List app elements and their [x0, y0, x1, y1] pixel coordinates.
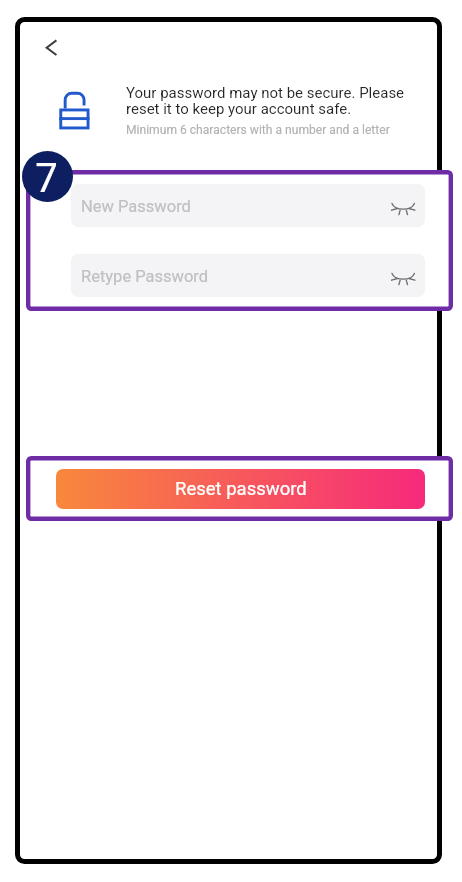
button[interactable]: Show password [391, 264, 415, 288]
button[interactable]: Retype Password [71, 254, 425, 297]
staticText: Minimum 6 characters with a number and a… [126, 123, 390, 137]
staticText: Reset password [175, 478, 307, 500]
staticText: Your password may not be secure. Please … [126, 84, 405, 117]
button[interactable]: Back [34, 34, 62, 62]
staticText: New Password [81, 197, 191, 216]
button[interactable]: Show password [391, 194, 415, 218]
button[interactable]: Reset password [56, 469, 425, 509]
button[interactable]: New Password [71, 184, 425, 227]
staticText: 7 [35, 155, 58, 202]
staticText: Retype Password [81, 267, 209, 286]
